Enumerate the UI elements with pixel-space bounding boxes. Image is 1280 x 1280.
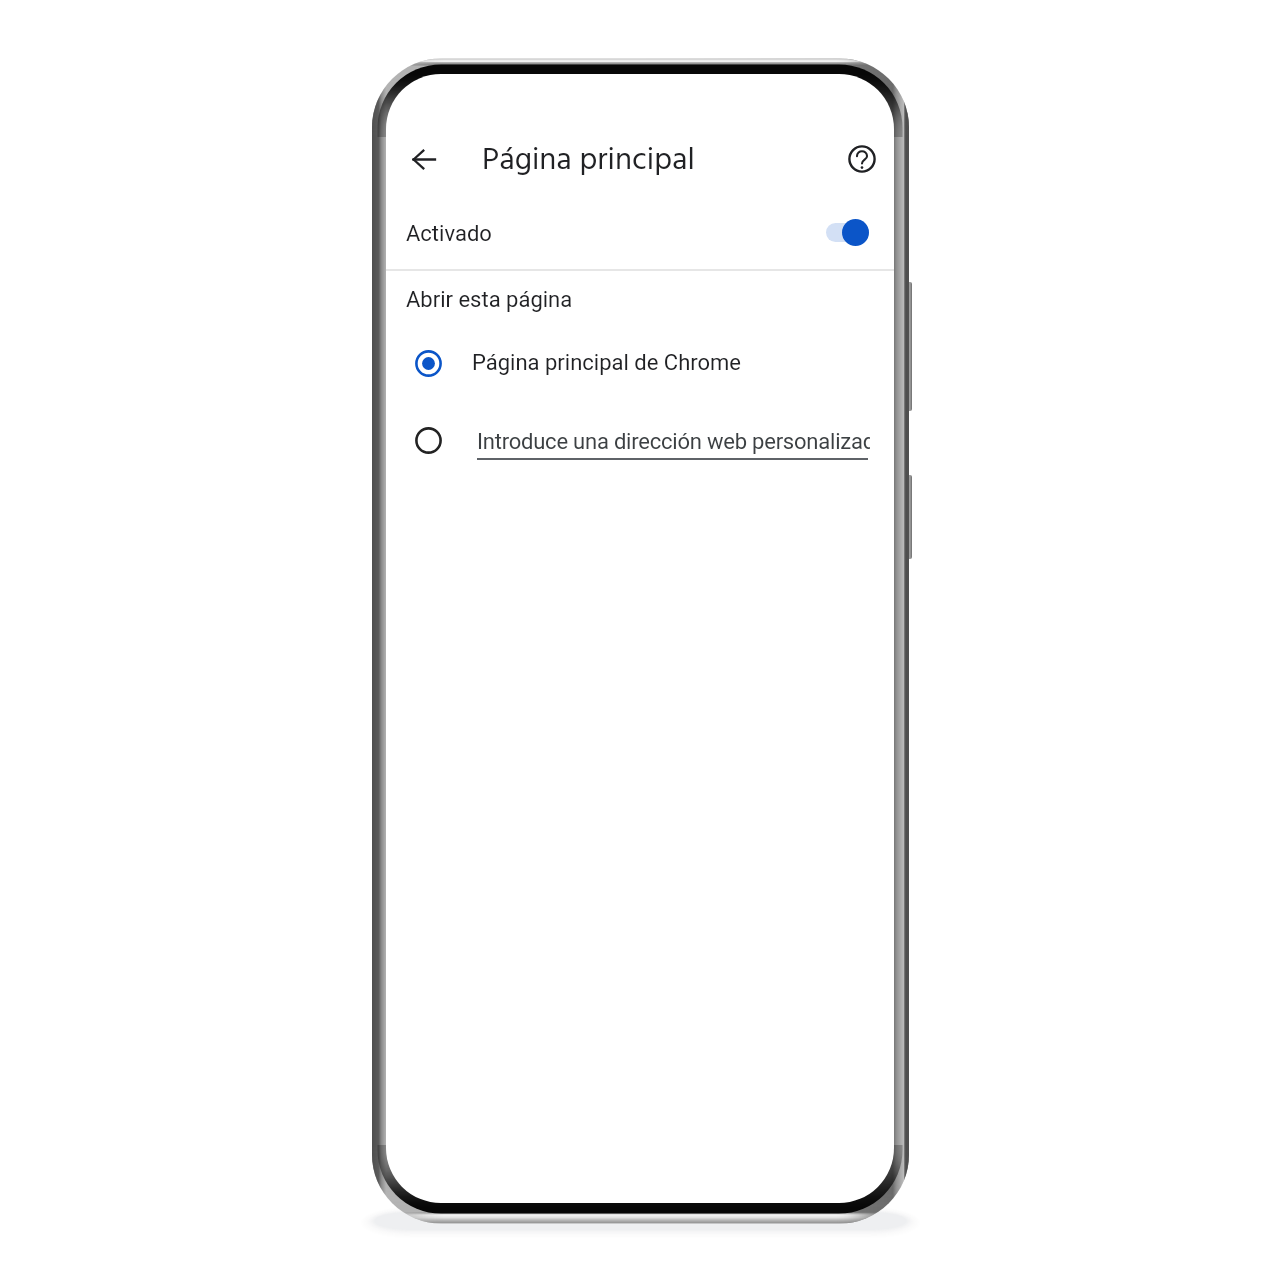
staticText: Abrir esta página <box>406 287 573 313</box>
button[interactable] <box>386 413 894 469</box>
button[interactable]: Ayuda <box>838 135 886 183</box>
button[interactable]: Atrás <box>400 135 448 183</box>
button[interactable]: Página principal de Chrome <box>386 335 894 391</box>
staticText: Introduce una dirección web personalizad… <box>477 429 870 455</box>
staticText: Activado <box>406 221 492 247</box>
button[interactable]: Activado <box>814 207 880 259</box>
staticText: Página principal de Chrome <box>472 350 742 376</box>
staticText: Página principal <box>482 136 695 186</box>
